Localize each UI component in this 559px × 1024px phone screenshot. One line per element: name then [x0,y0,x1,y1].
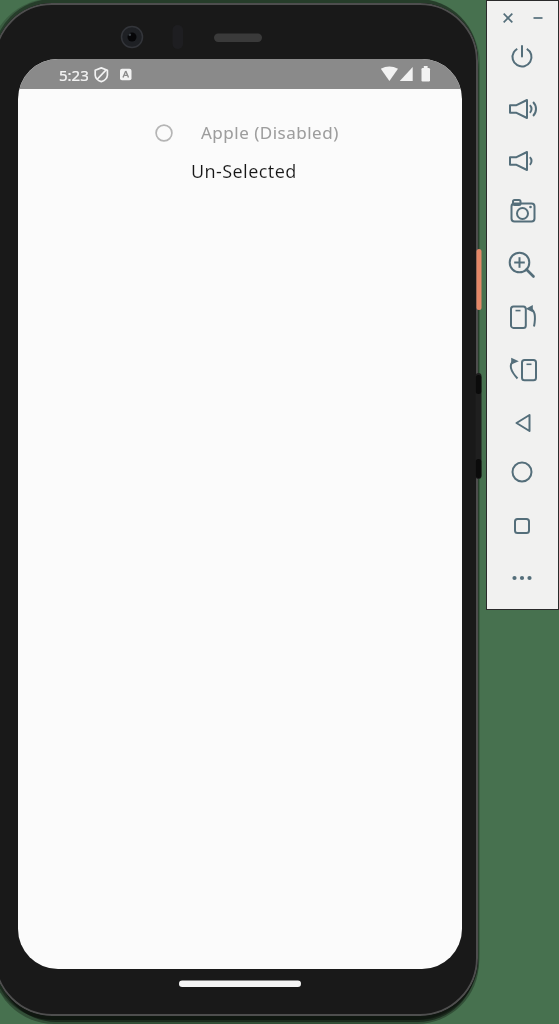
button[interactable] [502,192,542,232]
button[interactable] [502,37,542,77]
button[interactable] [502,506,542,546]
button[interactable] [502,452,542,492]
button[interactable] [518,0,558,38]
button[interactable] [488,0,528,38]
button[interactable] [502,300,542,340]
staticText: Un-Selected [191,159,297,184]
button[interactable] [502,349,542,389]
button[interactable] [502,558,542,598]
staticText: Apple (Disabled) [201,121,339,144]
button[interactable] [502,402,542,442]
button[interactable] [502,245,542,285]
button[interactable] [502,141,542,181]
button[interactable] [502,89,542,129]
button[interactable]: Apple (Disabled) [155,116,339,149]
staticText: 5:23 [59,65,89,85]
